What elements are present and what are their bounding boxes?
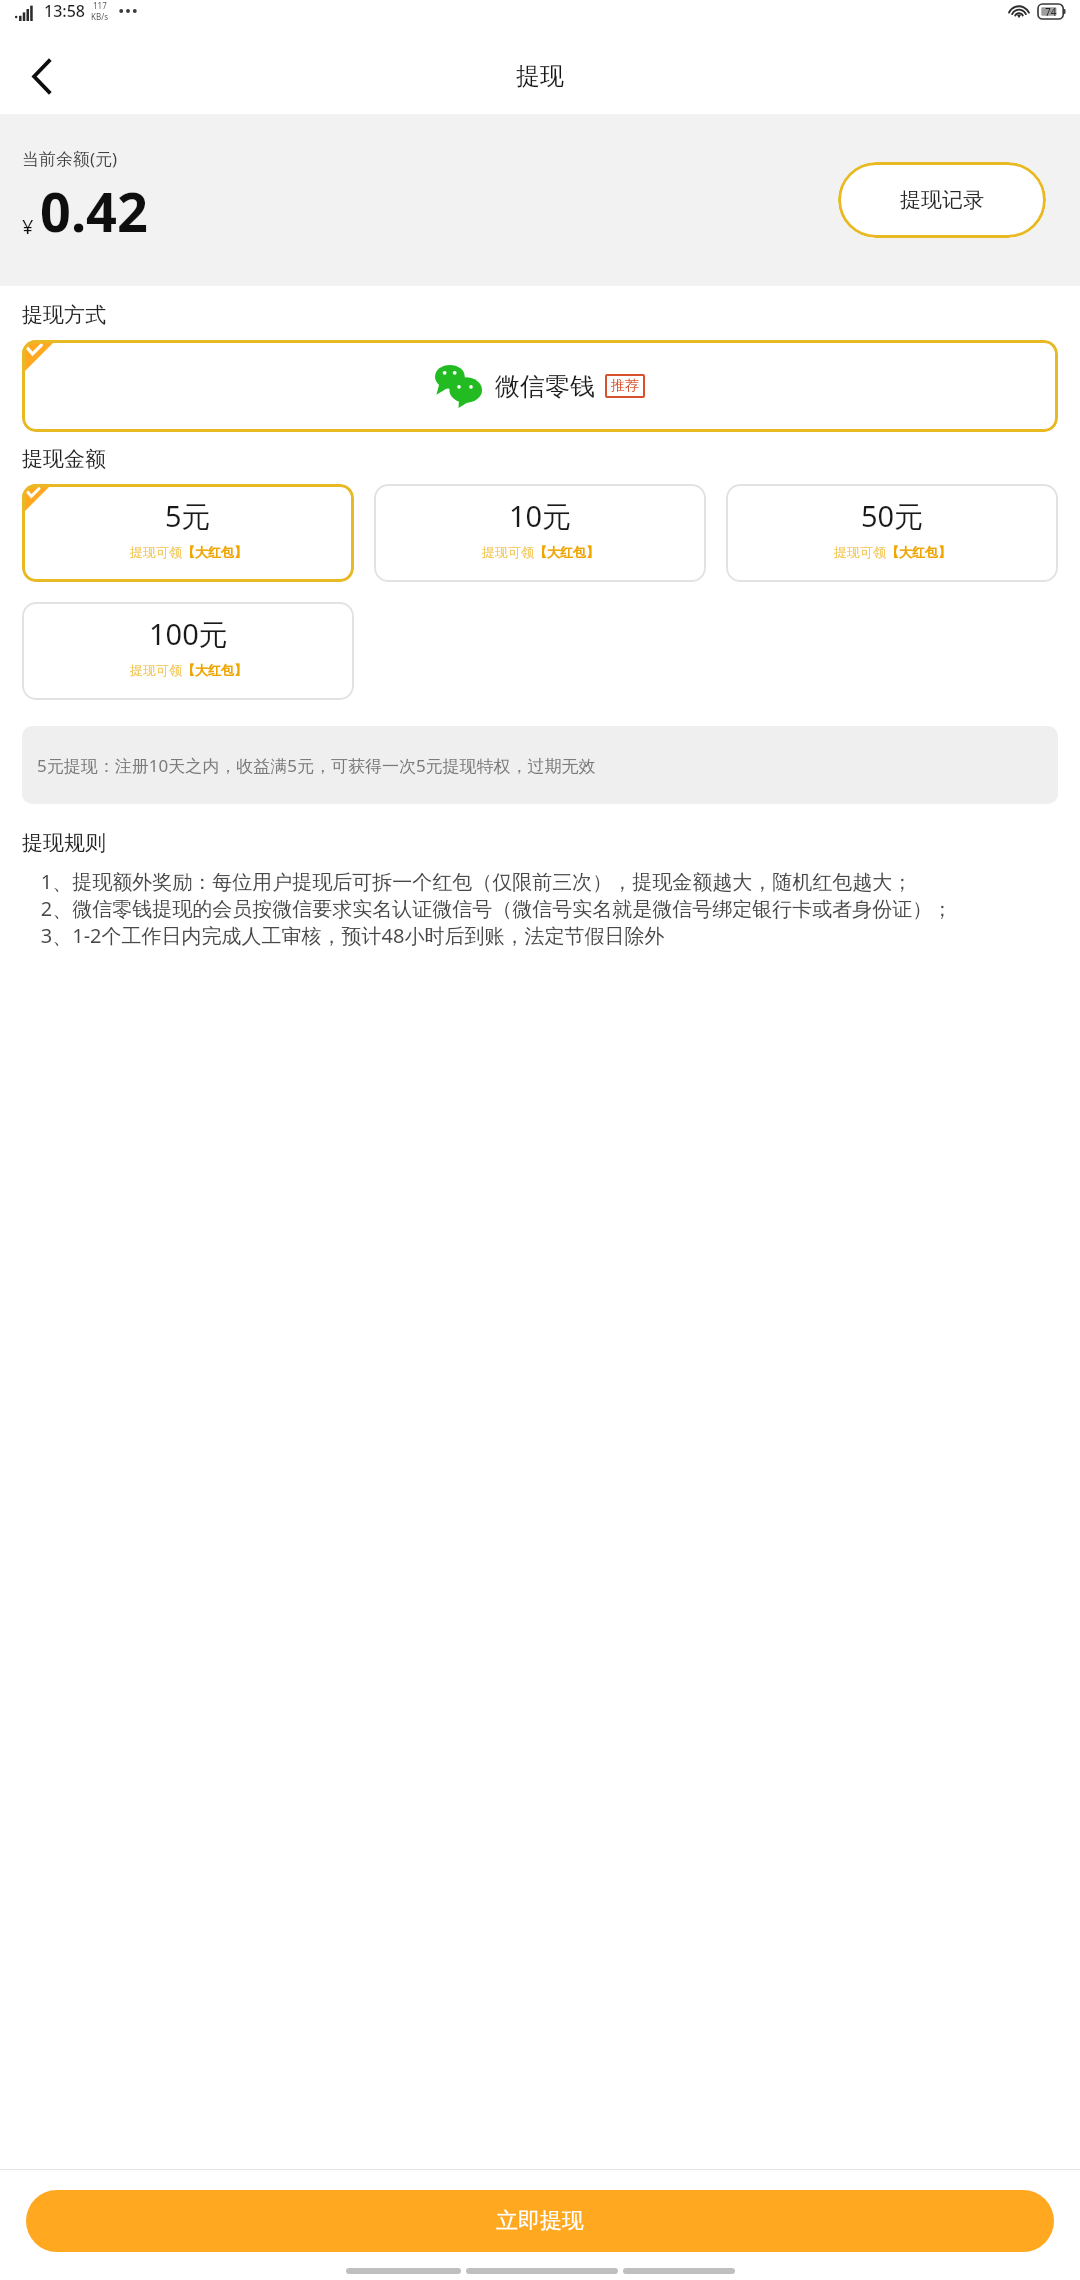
staticText: 1、提现额外奖励：每位用户提现后可拆一个红包（仅限前三次），提现金额越大，随机红… [20,868,913,895]
staticText: 提现可领【大红包】 [130,662,247,678]
staticText: 50元 [861,496,924,536]
staticText: 提现可领【大红包】 [482,544,599,560]
staticText: 13:58 [44,0,85,22]
staticText: 3、1-2个工作日内完成人工审核，预计48小时后到账，法定节假日除外 [20,922,665,949]
button[interactable]: 50元 [726,484,1058,582]
staticText: 提现方式 [22,302,106,328]
staticText: 微信零钱 [495,371,595,402]
button[interactable]: 微信零钱 [22,340,1058,432]
staticText: 74 [1045,5,1057,19]
staticText: 5元提现：注册10天之内，收益满5元，可获得一次5元提现特权，过期无效 [37,754,596,777]
staticText: 提现规则 [22,830,106,856]
staticText: 立即提现 [496,2207,584,2235]
staticText: 0.42 [40,174,148,248]
button[interactable]: 10元 [374,484,706,582]
staticText: 10元 [509,496,572,536]
staticText: 提现 [516,61,564,91]
button[interactable]: 立即提现 [26,2190,1054,2252]
button[interactable]: Back [14,48,70,104]
staticText: 117 [93,0,107,11]
staticText: 提现金额 [22,446,106,472]
button[interactable]: 5元 [22,484,354,582]
staticText: 提现可领【大红包】 [130,544,247,560]
staticText: 100元 [149,614,228,654]
staticText: ¥ [22,213,34,240]
staticText: KB/s [91,11,108,22]
staticText: 提现记录 [900,187,984,213]
staticText: 2、微信零钱提现的会员按微信要求实名认证微信号（微信号实名就是微信号绑定银行卡或… [20,895,953,922]
staticText: 提现可领【大红包】 [834,544,951,560]
staticText: 5元 [165,496,211,536]
staticText: 当前余额(元) [22,147,118,170]
button[interactable]: 100元 [22,602,354,700]
button[interactable]: 提现记录 [838,162,1046,238]
staticText: 推荐 [611,377,639,395]
